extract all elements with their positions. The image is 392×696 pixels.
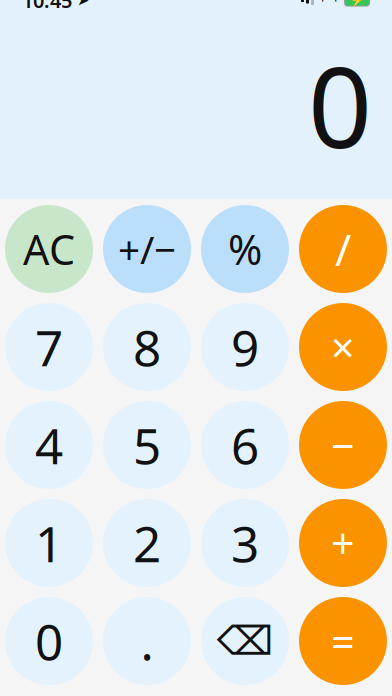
staticText: 2	[133, 510, 161, 576]
staticText: ⌫	[216, 618, 273, 664]
staticText: 5	[133, 412, 161, 478]
staticText: /	[335, 220, 351, 278]
button[interactable]: Delete	[201, 597, 289, 685]
staticText: 10:45	[22, 0, 72, 14]
button[interactable]: 4	[5, 401, 93, 489]
button[interactable]: ×	[299, 303, 387, 391]
button[interactable]: −	[299, 401, 387, 489]
staticText: 0	[35, 608, 63, 674]
staticText: ⚡	[349, 0, 364, 7]
staticText: %	[228, 222, 262, 276]
button[interactable]: 1	[5, 499, 93, 587]
staticText: 0	[308, 30, 372, 179]
staticText: ×	[331, 320, 355, 374]
staticText: 6	[231, 412, 259, 478]
staticText: =	[331, 614, 355, 668]
staticText: 9	[231, 314, 259, 380]
staticText: 4	[35, 412, 63, 478]
button[interactable]: 8	[103, 303, 191, 391]
staticText: ➤	[77, 0, 89, 8]
button[interactable]: 3	[201, 499, 289, 587]
button[interactable]: 5	[103, 401, 191, 489]
staticText: .	[140, 608, 153, 674]
button[interactable]: 2	[103, 499, 191, 587]
staticText: 7	[35, 314, 63, 380]
staticText: 8	[133, 314, 161, 380]
button[interactable]: 0	[5, 597, 93, 685]
button[interactable]: /	[299, 205, 387, 293]
button[interactable]: %	[201, 205, 289, 293]
staticText: −	[331, 418, 355, 472]
button[interactable]: =	[299, 597, 387, 685]
button[interactable]: 9	[201, 303, 289, 391]
button[interactable]: +	[299, 499, 387, 587]
staticText: +/−	[118, 223, 176, 275]
button[interactable]: +/−	[103, 205, 191, 293]
button[interactable]: AC	[5, 205, 93, 293]
staticText: +	[331, 516, 355, 570]
button[interactable]: .	[103, 597, 191, 685]
button[interactable]: 6	[201, 401, 289, 489]
staticText: 1	[35, 510, 63, 576]
staticText: 3	[231, 510, 259, 576]
staticText: AC	[23, 222, 75, 276]
staticText: ◠	[322, 0, 336, 11]
button[interactable]: 7	[5, 303, 93, 391]
